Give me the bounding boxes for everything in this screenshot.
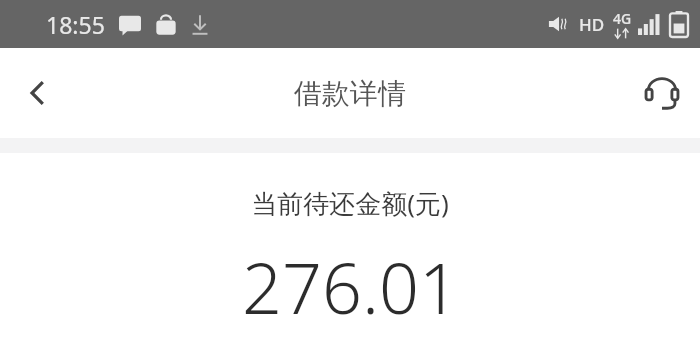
staticText: 4G — [613, 9, 632, 28]
button[interactable]: Customer service — [624, 55, 700, 131]
staticText: HD — [579, 13, 605, 36]
staticText: 借款详情 — [294, 76, 406, 111]
staticText: 276.01 — [242, 239, 459, 334]
button[interactable]: Back — [0, 55, 76, 131]
staticText: 当前待还金额(元) — [251, 185, 449, 221]
staticText: 18:55 — [46, 9, 105, 40]
